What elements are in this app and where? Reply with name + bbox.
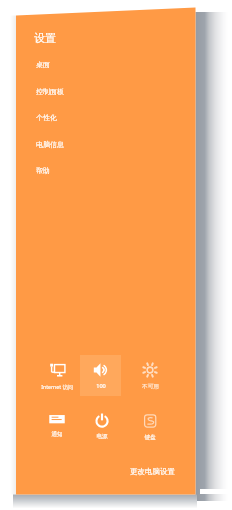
button[interactable]: 控制面板 <box>16 78 196 104</box>
button[interactable]: 电脑信息 <box>16 131 196 157</box>
button[interactable]: Keyboard <box>130 406 171 447</box>
staticText: 控制面板 <box>36 87 64 96</box>
staticText: 更改电脑设置 <box>130 467 175 476</box>
button[interactable]: Notifications <box>36 404 77 445</box>
button[interactable]: Power <box>82 405 123 446</box>
staticText: 帮助 <box>36 166 50 175</box>
button[interactable]: 更改电脑设置 <box>120 462 175 480</box>
staticText: 电脑信息 <box>36 140 64 149</box>
staticText: Internet 访问 <box>41 383 73 390</box>
staticText: 桌面 <box>36 60 50 69</box>
button[interactable]: Volume <box>80 355 121 396</box>
button[interactable]: Brightness <box>130 355 171 396</box>
staticText: 100 <box>96 382 106 390</box>
staticText: 通知 <box>51 431 63 438</box>
staticText: 设置 <box>34 31 56 45</box>
button[interactable]: 帮助 <box>16 157 196 183</box>
staticText: 个性化 <box>36 113 57 122</box>
staticText: 键盘 <box>144 434 156 441</box>
button[interactable]: 设置 <box>34 31 56 45</box>
button[interactable]: 桌面 <box>16 51 196 77</box>
button[interactable]: Internet access <box>36 355 77 396</box>
staticText: 电源 <box>96 433 108 440</box>
staticText: 不可用 <box>142 383 159 390</box>
button[interactable]: 个性化 <box>16 104 196 130</box>
